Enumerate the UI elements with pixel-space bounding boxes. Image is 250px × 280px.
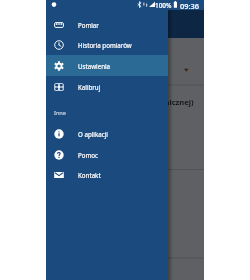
button[interactable]: Kontakt	[46, 164, 168, 185]
staticText: Pomiar	[78, 21, 99, 29]
staticText: Ustawienia	[78, 62, 111, 70]
button[interactable]: Ustawienia	[46, 55, 168, 76]
button[interactable]: Pomiar	[46, 14, 168, 35]
staticText: Inne	[54, 109, 66, 117]
button[interactable]: Kalibruj	[46, 76, 168, 97]
staticText: 100%	[155, 1, 172, 10]
button[interactable]: O aplikacji	[46, 123, 168, 144]
staticText: 09:36	[180, 1, 199, 11]
button[interactable]: Historia pomiarów	[46, 34, 168, 55]
staticText: O aplikacji	[78, 130, 108, 138]
staticText: Pomoc	[78, 151, 98, 159]
staticText: (w skali logarytmicznej)	[104, 97, 194, 107]
button[interactable]: Pomoc	[46, 144, 168, 165]
staticText: Kontakt	[78, 171, 101, 179]
button[interactable]: Pomiar	[46, 0, 168, 280]
staticText: Kalibruj	[78, 83, 101, 91]
staticText: Historia pomiarów	[78, 41, 132, 49]
